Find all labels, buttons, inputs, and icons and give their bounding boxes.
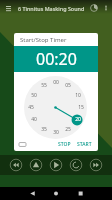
staticText: 55 (41, 82, 47, 89)
button[interactable]: Open navigation menu (2, 2, 14, 14)
staticText: 6 Tinnitus Masking Sound (18, 5, 85, 12)
staticText: 50 (31, 92, 37, 99)
staticText: 00:20 (36, 48, 77, 70)
button[interactable]: Fast forward (89, 158, 103, 172)
staticText: START (77, 141, 92, 148)
staticText: 20 (75, 116, 81, 123)
button[interactable]: Sleep timer (88, 2, 100, 14)
button[interactable]: Loop (69, 158, 83, 172)
button[interactable]: Rewind (9, 158, 23, 172)
staticText: 40 (31, 116, 37, 123)
button[interactable]: STOP (55, 139, 74, 150)
staticText: Start/Stop Timer (20, 36, 67, 44)
staticText: 25 (65, 126, 71, 133)
button[interactable]: START (74, 139, 95, 150)
button[interactable]: Volume up (29, 158, 43, 172)
staticText: 05 (65, 82, 71, 89)
staticText: 30 (53, 129, 59, 136)
staticText: 45 (28, 104, 34, 111)
staticText: 00 (53, 79, 59, 86)
staticText: 35 (41, 126, 47, 133)
staticText: 15 (78, 104, 84, 111)
staticText: 10 (75, 92, 81, 99)
button[interactable]: Keyboard input (17, 139, 28, 150)
button[interactable]: Play (49, 158, 63, 172)
button[interactable]: More options (100, 2, 112, 14)
staticText: STOP (58, 141, 71, 148)
